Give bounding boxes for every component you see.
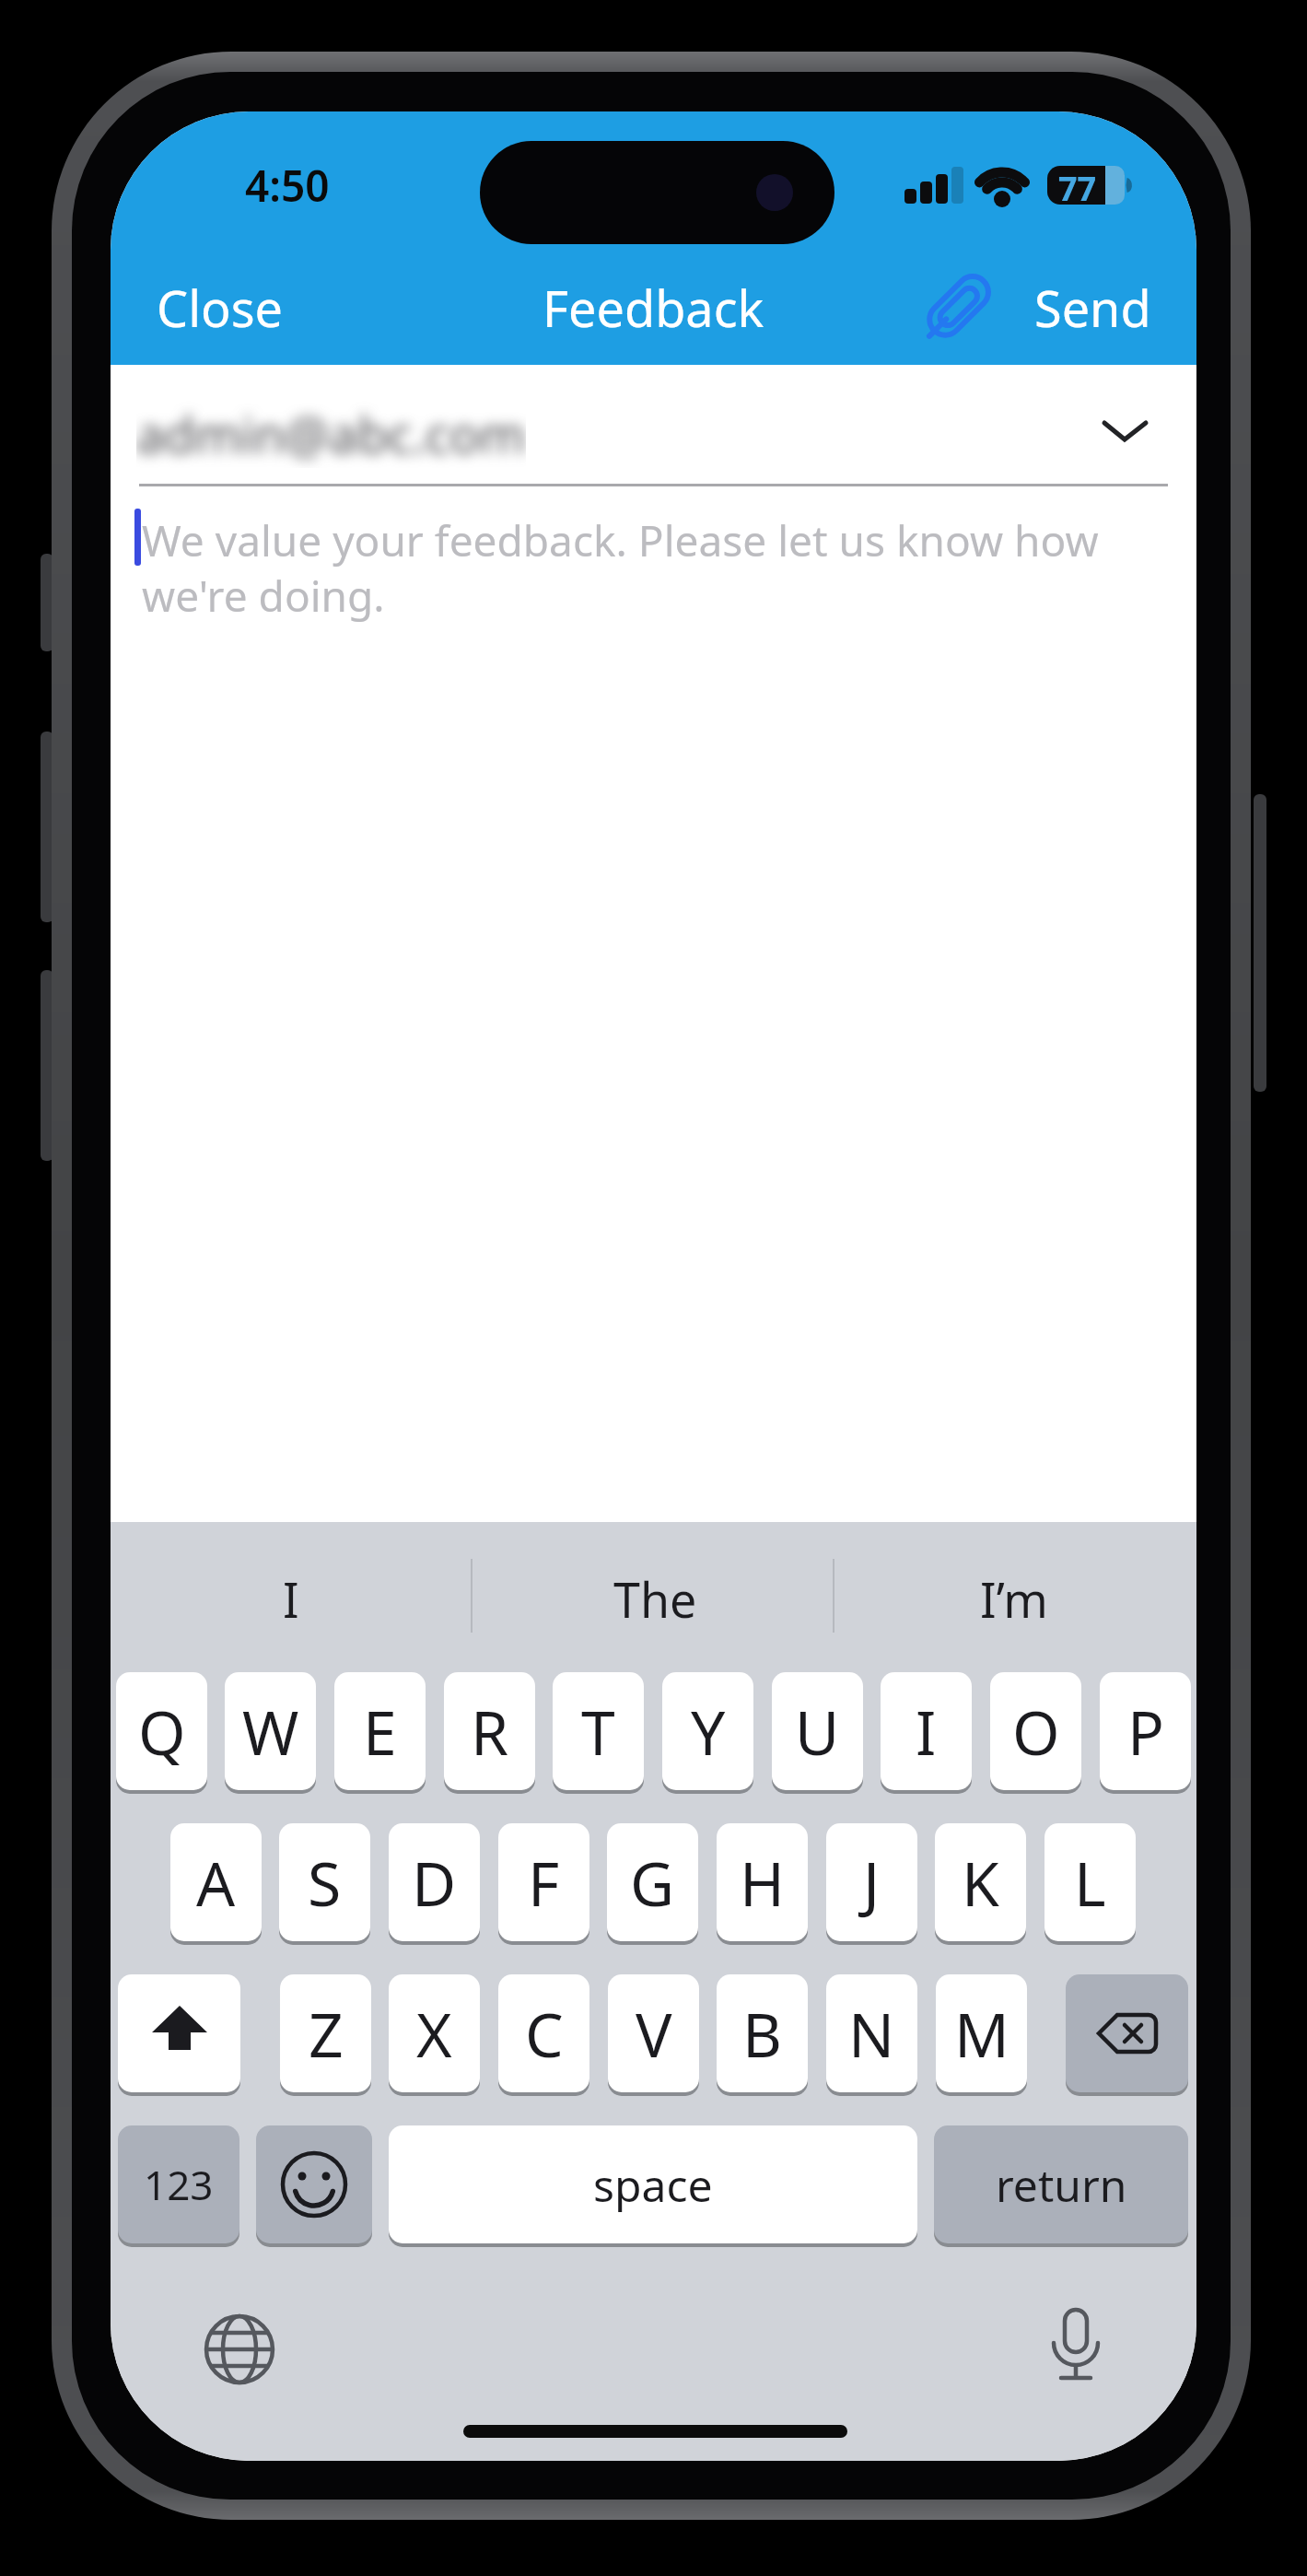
button[interactable] <box>118 1974 240 2092</box>
button[interactable]: space <box>389 2125 917 2243</box>
staticText: R <box>471 1690 509 1773</box>
button[interactable]: X <box>389 1974 480 2092</box>
staticText: return <box>996 2155 1127 2215</box>
button[interactable] <box>1098 414 1153 451</box>
button[interactable] <box>1066 1974 1188 2092</box>
button[interactable] <box>1039 2308 1113 2385</box>
staticText: B <box>742 1992 782 2075</box>
staticText: The <box>613 1566 697 1632</box>
staticText: K <box>962 1841 999 1924</box>
button[interactable]: We value your feedback. Please let us kn… <box>142 498 1196 683</box>
button[interactable]: The <box>563 1563 747 1633</box>
staticText: T <box>581 1690 615 1773</box>
staticText: D <box>412 1841 457 1924</box>
staticText: Y <box>691 1690 726 1773</box>
staticText: O <box>1012 1690 1060 1773</box>
staticText: We value your feedback. Please let us kn… <box>142 511 1099 625</box>
button[interactable]: K <box>935 1823 1026 1941</box>
button[interactable] <box>203 2313 276 2386</box>
button[interactable]: L <box>1044 1823 1136 1941</box>
button[interactable]: Send <box>1009 274 1175 338</box>
staticText: A <box>196 1841 236 1924</box>
button[interactable] <box>256 2125 372 2243</box>
button[interactable]: S <box>279 1823 370 1941</box>
staticText: Close <box>157 274 284 338</box>
button[interactable]: D <box>389 1823 480 1941</box>
staticText: M <box>954 1992 1009 2075</box>
button[interactable]: Close <box>138 274 341 338</box>
button[interactable]: B <box>717 1974 808 2092</box>
button[interactable]: I <box>881 1672 972 1790</box>
button[interactable]: O <box>990 1672 1081 1790</box>
staticText: N <box>848 1992 895 2075</box>
staticText: E <box>363 1690 397 1773</box>
button[interactable]: W <box>225 1672 316 1790</box>
staticText: H <box>740 1841 785 1924</box>
button[interactable]: J <box>826 1823 917 1941</box>
button[interactable]: A <box>170 1823 262 1941</box>
staticText: W <box>242 1690 299 1773</box>
staticText: P <box>1127 1690 1164 1773</box>
staticText: V <box>636 1992 672 2075</box>
staticText: S <box>308 1841 342 1924</box>
button[interactable]: N <box>826 1974 917 2092</box>
button[interactable]: U <box>772 1672 863 1790</box>
staticText: Send <box>1034 274 1151 338</box>
staticText: 4:50 <box>245 157 330 212</box>
staticText: space <box>593 2155 713 2215</box>
staticText: I <box>283 1566 299 1632</box>
button[interactable]: return <box>934 2125 1188 2243</box>
button[interactable]: C <box>498 1974 589 2092</box>
button[interactable]: T <box>553 1672 644 1790</box>
staticText: F <box>528 1841 560 1924</box>
staticText: X <box>416 1992 452 2075</box>
button[interactable]: I <box>199 1563 383 1633</box>
button[interactable]: P <box>1100 1672 1191 1790</box>
button[interactable] <box>916 266 998 349</box>
button[interactable]: R <box>444 1672 535 1790</box>
staticText: Feedback <box>543 274 764 338</box>
button[interactable]: F <box>498 1823 589 1941</box>
staticText: I <box>916 1690 937 1773</box>
button[interactable]: 123 <box>118 2125 239 2243</box>
button[interactable]: M <box>936 1974 1027 2092</box>
button[interactable]: E <box>334 1672 426 1790</box>
button[interactable]: V <box>608 1974 699 2092</box>
staticText: admin@abc.com <box>136 400 526 468</box>
button[interactable]: I’m <box>922 1563 1106 1633</box>
staticText: Z <box>309 1992 344 2075</box>
staticText: Q <box>138 1690 186 1773</box>
staticText: I’m <box>980 1566 1048 1632</box>
button[interactable]: admin@abc.com <box>136 395 542 473</box>
staticText: 77 <box>1058 166 1097 205</box>
staticText: U <box>795 1690 840 1773</box>
button[interactable]: G <box>607 1823 698 1941</box>
button[interactable]: Q <box>116 1672 207 1790</box>
staticText: 123 <box>144 2157 214 2212</box>
staticText: L <box>1074 1841 1106 1924</box>
staticText: J <box>863 1841 881 1924</box>
staticText: C <box>525 1992 564 2075</box>
button[interactable]: Y <box>662 1672 753 1790</box>
button[interactable]: Z <box>280 1974 371 2092</box>
staticText: G <box>630 1841 675 1924</box>
button[interactable]: H <box>717 1823 808 1941</box>
